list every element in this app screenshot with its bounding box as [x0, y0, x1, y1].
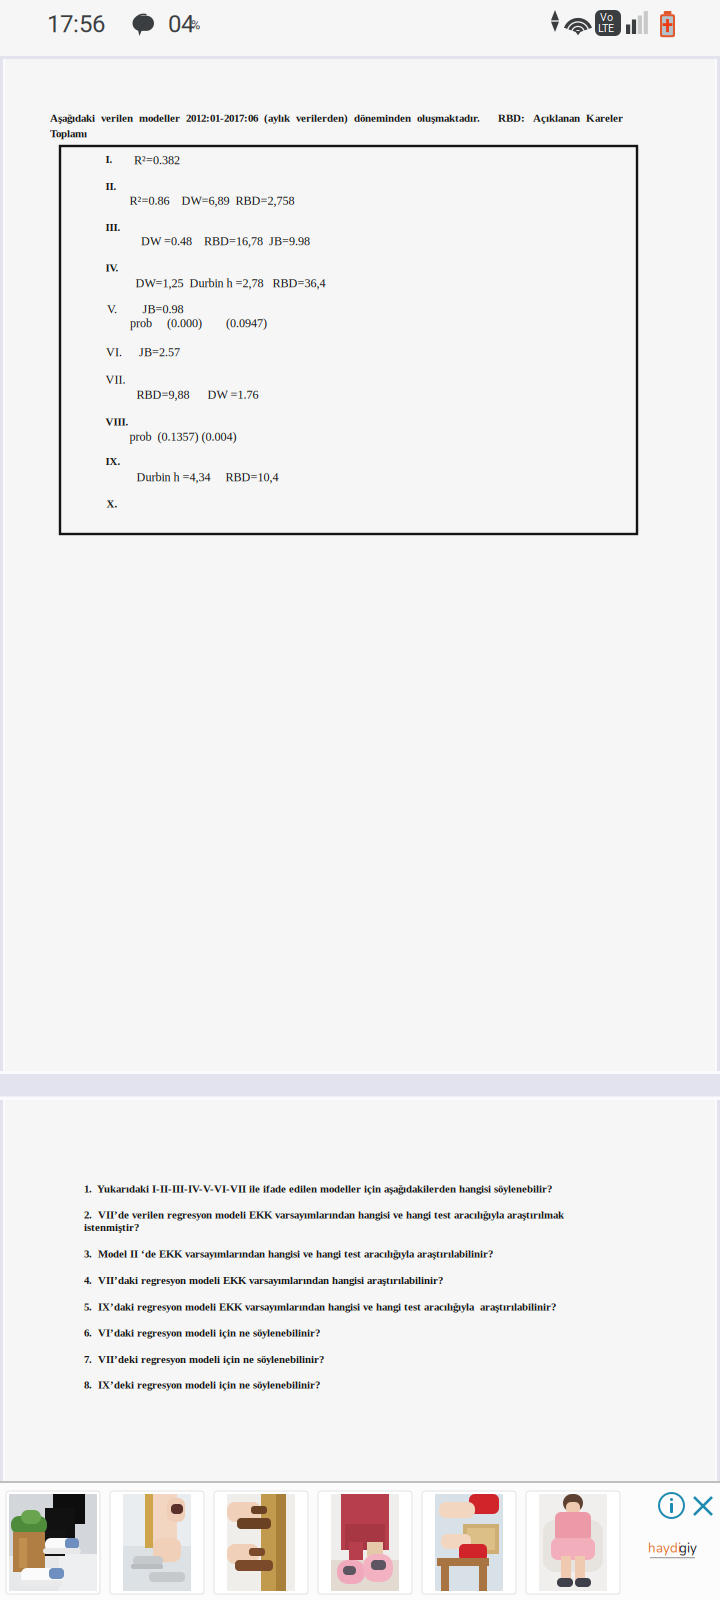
- staticText: VII.: [105, 373, 125, 386]
- button[interactable]: [318, 1491, 412, 1594]
- staticText: JB=2.57: [139, 345, 180, 359]
- staticText: III.: [105, 221, 120, 233]
- staticText: 7. VII’deki regresyon modeli için ne söy…: [84, 1353, 324, 1365]
- staticText: DW=1,25 Durbin h =2,78 RBD=36,4: [135, 276, 325, 290]
- button[interactable]: [526, 1491, 620, 1594]
- staticText: DW =0.48 RBD=16,78 JB=9.98: [141, 234, 310, 248]
- staticText: R²=0.86 DW=6,89 RBD=2,758: [129, 194, 294, 207]
- button[interactable]: [110, 1491, 204, 1594]
- staticText: LTE: [598, 22, 614, 34]
- staticText: 5. IX’daki regresyon modeli EKK varsayım…: [84, 1301, 556, 1313]
- staticText: 2. VII’de verilen regresyon modeli EKK v…: [84, 1209, 564, 1221]
- button[interactable]: [214, 1491, 308, 1594]
- staticText: prob (0.1357) (0.004): [129, 430, 236, 443]
- staticText: 1. Yukarıdaki I-II-III-IV-V-VI-VII ile i…: [84, 1183, 552, 1195]
- staticText: VI.: [106, 345, 122, 359]
- staticText: 4. VII’daki regresyon modeli EKK varsayı…: [84, 1274, 443, 1286]
- staticText: Durbin h =4,34 RBD=10,4: [136, 470, 278, 484]
- staticText: haydi: [648, 1539, 681, 1557]
- button[interactable]: Close ad: [693, 1496, 713, 1516]
- staticText: Vo: [600, 11, 613, 23]
- staticText: 8. IX’deki regresyon modeli için ne söyl…: [84, 1379, 320, 1391]
- button[interactable]: [422, 1491, 516, 1594]
- button[interactable]: Ad information: [659, 1493, 685, 1519]
- staticText: II.: [105, 180, 116, 192]
- staticText: IV.: [105, 262, 118, 274]
- staticText: I.: [105, 153, 112, 165]
- staticText: X.: [106, 498, 117, 510]
- staticText: R²=0.382: [134, 153, 180, 167]
- staticText: giy: [679, 1539, 697, 1557]
- staticText: %: [191, 17, 200, 32]
- staticText: V.: [107, 302, 117, 316]
- staticText: JB=0.98: [142, 302, 183, 316]
- staticText: IX.: [105, 455, 120, 467]
- staticText: RBD=9,88 DW =1.76: [136, 388, 258, 401]
- staticText: Aşağıdaki verilen modeller 2012:01-2017:…: [50, 112, 623, 124]
- staticText: 3. Model II ‘de EKK varsayımlarından han…: [84, 1248, 493, 1260]
- staticText: 17:56: [47, 10, 105, 38]
- staticText: 04: [168, 10, 194, 38]
- staticText: prob (0.000) (0.0947): [130, 316, 267, 330]
- staticText: VIII.: [105, 416, 128, 428]
- staticText: Toplamı: [50, 127, 87, 140]
- button[interactable]: [6, 1491, 100, 1594]
- staticText: istenmiştir?: [84, 1221, 139, 1233]
- staticText: 6. VI’daki regresyon modeli için ne söyl…: [84, 1327, 320, 1339]
